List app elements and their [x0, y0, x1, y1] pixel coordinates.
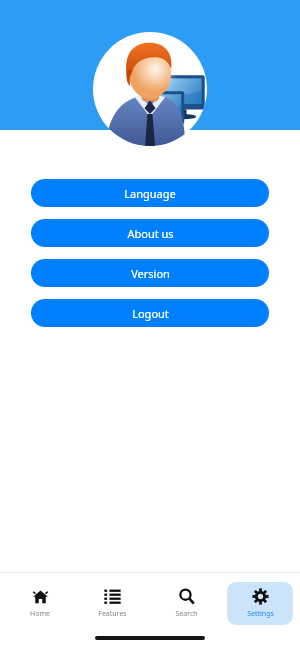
- button[interactable]: Home: [7, 582, 72, 625]
- button[interactable]: Settings: [227, 582, 293, 625]
- staticText: Home: [30, 609, 50, 619]
- button[interactable]: About us: [31, 219, 269, 247]
- staticText: Language: [124, 186, 176, 201]
- staticText: Search: [175, 609, 198, 619]
- staticText: Version: [131, 266, 170, 281]
- staticText: Logout: [132, 306, 169, 321]
- staticText: Features: [98, 609, 127, 619]
- button[interactable]: Features: [80, 582, 145, 625]
- staticText: Settings: [247, 609, 274, 619]
- button[interactable]: Logout: [31, 299, 269, 327]
- staticText: About us: [127, 226, 174, 241]
- button[interactable]: Version: [31, 259, 269, 287]
- button[interactable]: Search: [153, 582, 219, 625]
- button[interactable]: Language: [31, 179, 269, 207]
